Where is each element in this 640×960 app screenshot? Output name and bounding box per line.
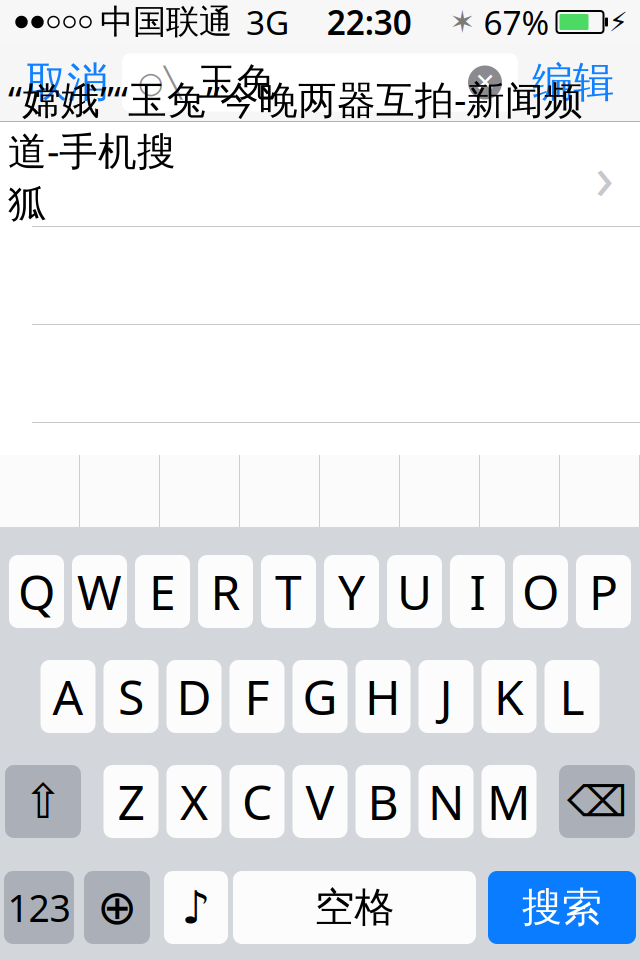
staticText: R	[210, 560, 240, 623]
button[interactable]: X	[166, 765, 221, 838]
staticText: “嫦娥”“玉兔”今晚两器互拍-新闻频道-手机搜	[8, 73, 583, 176]
staticText: 67%	[483, 0, 549, 44]
staticText: ✕	[474, 68, 495, 97]
button[interactable]: K	[481, 660, 536, 733]
staticText: P	[589, 560, 618, 623]
button[interactable]: W	[72, 555, 127, 628]
button[interactable]: R	[198, 555, 253, 628]
button[interactable]: 编辑	[518, 50, 628, 114]
staticText: S	[118, 665, 144, 728]
button[interactable]: Suggestion	[480, 455, 560, 527]
button[interactable]: Clear text	[468, 65, 502, 99]
button[interactable]: G	[292, 660, 347, 733]
button[interactable]: Y	[324, 555, 379, 628]
staticText: U	[397, 560, 432, 623]
button[interactable]: E	[135, 555, 190, 628]
staticText: T	[275, 560, 302, 623]
button[interactable]: 123	[4, 871, 74, 944]
staticText: Z	[117, 770, 144, 833]
staticText: X	[180, 770, 208, 833]
staticText: G	[302, 665, 337, 728]
staticText: ⚡︎	[609, 7, 628, 37]
staticText: ⌫	[567, 777, 627, 826]
button[interactable]: I	[450, 555, 505, 628]
staticText: Y	[338, 560, 365, 623]
staticText: 空格	[314, 883, 394, 932]
button[interactable]: Suggestion	[80, 455, 160, 527]
button[interactable]: Delete	[559, 765, 635, 838]
staticText: D	[176, 665, 211, 728]
button[interactable]: Dictation	[164, 871, 228, 944]
button[interactable]: V	[292, 765, 347, 838]
button[interactable]: O	[513, 555, 568, 628]
button[interactable]: 取消	[12, 50, 122, 114]
staticText: ›	[595, 135, 614, 217]
staticText: H	[365, 665, 401, 728]
button[interactable]: S	[103, 660, 158, 733]
staticText: W	[77, 560, 122, 623]
staticText: ⊕	[97, 880, 137, 935]
staticText: ♪	[181, 882, 210, 933]
button[interactable]: U	[387, 555, 442, 628]
staticText: V	[305, 770, 334, 833]
staticText: 22:30	[327, 0, 412, 44]
staticText: B	[367, 770, 398, 833]
staticText: N	[428, 770, 464, 833]
button[interactable]: T	[261, 555, 316, 628]
staticText: E	[149, 560, 176, 623]
staticText: ✶	[449, 5, 475, 39]
staticText: Q	[18, 560, 55, 623]
staticText: ○╲	[138, 66, 182, 99]
staticText: F	[244, 665, 269, 728]
staticText: 搜索	[522, 883, 602, 932]
staticText: J	[439, 665, 452, 728]
staticText: A	[52, 665, 83, 728]
staticText: 中国联通	[100, 1, 232, 42]
button[interactable]: J	[418, 660, 473, 733]
staticText: 123	[7, 883, 70, 932]
button[interactable]: Suggestion	[0, 455, 80, 527]
button[interactable]: F	[229, 660, 284, 733]
staticText: K	[494, 665, 524, 728]
button[interactable]: 空格	[233, 871, 476, 944]
button[interactable]: Suggestion	[560, 455, 640, 527]
button[interactable]: H	[355, 660, 410, 733]
staticText: M	[487, 770, 531, 833]
staticText: 狐	[8, 180, 47, 227]
button[interactable]: Suggestion	[400, 455, 480, 527]
button[interactable]: C	[229, 765, 284, 838]
button[interactable]: Shift	[5, 765, 81, 838]
staticText: C	[242, 770, 272, 833]
button[interactable]: 搜索	[488, 871, 636, 944]
staticText: I	[469, 560, 485, 623]
button[interactable]: Next keyboard	[84, 871, 150, 944]
button[interactable]: Suggestion	[320, 455, 400, 527]
button[interactable]: P	[576, 555, 631, 628]
button[interactable]: Suggestion	[240, 455, 320, 527]
button[interactable]: M	[481, 765, 536, 838]
button[interactable]: D	[166, 660, 221, 733]
button[interactable]: A	[40, 660, 95, 733]
button[interactable]: Suggestion	[160, 455, 240, 527]
staticText: 3G	[246, 0, 289, 44]
staticText: 玉兔	[198, 59, 276, 106]
button[interactable]: B	[355, 765, 410, 838]
button[interactable]: Z	[103, 765, 158, 838]
button[interactable]: N	[418, 765, 473, 838]
staticText: O	[522, 560, 559, 623]
button[interactable]: “嫦娥”“玉兔”今晚两器互拍-新闻频道-手机搜	[0, 126, 640, 226]
button[interactable]: L	[544, 660, 599, 733]
staticText: ⇧	[23, 774, 63, 829]
button[interactable]: Q	[9, 555, 64, 628]
staticText: 取消	[26, 57, 108, 108]
staticText: 编辑	[532, 57, 614, 108]
staticText: L	[559, 665, 584, 728]
